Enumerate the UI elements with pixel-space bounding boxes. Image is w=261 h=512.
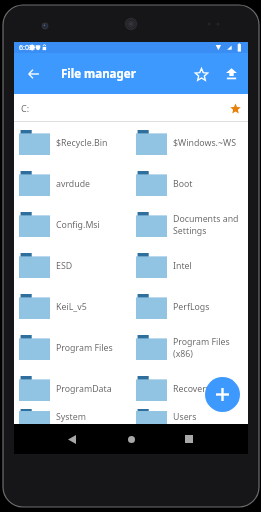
button[interactable]: Add	[205, 377, 240, 412]
staticText: avrdude	[56, 178, 128, 190]
staticText: C:	[21, 102, 30, 114]
button[interactable]: Back	[62, 429, 82, 449]
staticText: $Recycle.Bin	[56, 137, 128, 149]
staticText: Documents and Settings	[173, 213, 245, 236]
staticText: Boot	[173, 178, 245, 190]
staticText: File manager	[61, 66, 136, 82]
staticText: 6:02	[19, 43, 33, 53]
button[interactable]: Favorite	[190, 63, 212, 85]
button[interactable]: $Windows.~WS	[131, 122, 248, 163]
staticText: Program Files (x86)	[173, 336, 245, 359]
button[interactable]: Config.Msi	[14, 204, 131, 245]
button[interactable]: Users	[131, 409, 248, 424]
button[interactable]: Program Files (x86)	[131, 327, 248, 368]
staticText: ProgramData	[56, 383, 128, 395]
button[interactable]: Boot	[131, 163, 248, 204]
staticText: ESD	[56, 260, 128, 272]
button[interactable]: Home	[121, 429, 141, 449]
button[interactable]: Recents	[179, 429, 199, 449]
button[interactable]: System	[14, 409, 131, 424]
staticText: KeiL_v5	[56, 301, 128, 313]
staticText: Config.Msi	[56, 219, 128, 231]
staticText: $Windows.~WS	[173, 137, 245, 149]
button[interactable]: $Recycle.Bin	[14, 122, 131, 163]
button[interactable]: avrdude	[14, 163, 131, 204]
staticText: Recovery	[173, 383, 245, 395]
staticText: Program Files	[56, 342, 128, 354]
button[interactable]: Intel	[131, 245, 248, 286]
button[interactable]: Back	[21, 62, 45, 86]
staticText: System	[56, 411, 128, 423]
button[interactable]: PerfLogs	[131, 286, 248, 327]
button[interactable]: KeiL_v5	[14, 286, 131, 327]
button[interactable]: ESD	[14, 245, 131, 286]
staticText: PerfLogs	[173, 301, 245, 313]
button[interactable]: Documents and Settings	[131, 204, 248, 245]
button[interactable]: Recovery	[131, 368, 248, 409]
staticText: Users	[173, 411, 245, 423]
button[interactable]: Upload	[220, 63, 242, 85]
button[interactable]: ProgramData	[14, 368, 131, 409]
staticText: Intel	[173, 260, 245, 272]
button[interactable]: Program Files	[14, 327, 131, 368]
button[interactable]: C:	[14, 94, 248, 122]
